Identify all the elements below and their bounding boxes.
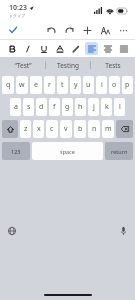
button[interactable]: Italic [21,42,34,55]
staticText: “Test” [14,61,32,70]
staticText: l [119,102,121,112]
button[interactable]: l [114,98,125,116]
button[interactable]: m [102,120,114,138]
staticText: Testing [57,61,79,70]
button[interactable]: e [30,76,42,94]
staticText: g [65,102,70,112]
button[interactable]: Bold [5,42,18,55]
button[interactable]: r [44,76,55,94]
button[interactable]: a [10,98,21,116]
button[interactable]: i [96,76,107,94]
staticText: b [78,124,83,134]
button[interactable]: u [83,76,94,94]
button[interactable]: p [122,76,133,94]
button[interactable]: 123 [2,142,30,160]
staticText: space [60,148,75,155]
button[interactable]: s [23,98,34,116]
staticText: h [78,102,83,112]
button[interactable]: c [46,120,58,138]
button[interactable]: Format [98,23,113,38]
button[interactable]: j [88,98,99,116]
staticText: u [86,80,91,90]
button[interactable]: y [70,76,81,94]
staticText: a [14,102,18,112]
staticText: 123 [11,148,21,155]
staticText: return [111,148,128,155]
staticText: n [92,124,97,134]
button[interactable]: Highlight [69,42,82,55]
button[interactable]: Backspace [116,120,133,138]
staticText: v [64,124,68,134]
button[interactable]: v [60,120,72,138]
staticText: c [50,124,54,134]
staticText: ドライブ [9,13,26,18]
button[interactable]: Align left [85,42,98,55]
button[interactable]: n [88,120,100,138]
button[interactable]: d [36,98,47,116]
staticText: x [37,124,41,134]
staticText: t [61,80,64,90]
staticText: i [101,80,103,90]
staticText: j [93,102,95,112]
button[interactable]: Tests [91,57,135,73]
button[interactable]: q [2,76,14,94]
button[interactable]: x [33,120,44,138]
button[interactable]: k [101,98,112,116]
staticText: Tests [105,61,121,70]
staticText: f [53,102,56,112]
button[interactable]: h [75,98,86,116]
button[interactable]: return [105,142,133,160]
button[interactable]: b [74,120,86,138]
staticText: s [27,102,31,112]
button[interactable]: Done [6,23,20,37]
staticText: p [125,80,130,90]
staticText: k [105,102,109,112]
staticText: d [39,102,44,112]
staticText: w [19,80,25,90]
staticText: m [105,124,112,134]
button[interactable]: Redo [62,23,77,38]
button[interactable]: Insert [80,23,95,38]
button[interactable]: List [117,42,130,55]
button[interactable]: Dictate [117,224,130,237]
staticText: q [6,80,11,90]
button[interactable]: “Test” [0,57,45,73]
button[interactable]: o [109,76,120,94]
button[interactable]: Change keyboard [5,224,18,237]
staticText: e [34,80,38,90]
staticText: z [24,124,28,134]
button[interactable]: space [32,142,103,160]
button[interactable]: z [20,120,31,138]
button[interactable]: Text color [53,42,66,55]
button[interactable]: More options [116,23,131,38]
staticText: o [112,80,117,90]
button[interactable]: Align center [101,42,114,55]
button[interactable]: f [49,98,60,116]
staticText: r [48,80,51,90]
button[interactable]: Underline [37,42,50,55]
staticText: y [74,80,78,90]
button[interactable]: t [57,76,68,94]
button[interactable]: g [62,98,73,116]
button[interactable]: Shift [2,120,18,138]
button[interactable]: Testing [46,57,90,73]
staticText: 10:23 [9,3,27,13]
button[interactable]: w [16,76,28,94]
button[interactable]: Undo [44,23,59,38]
